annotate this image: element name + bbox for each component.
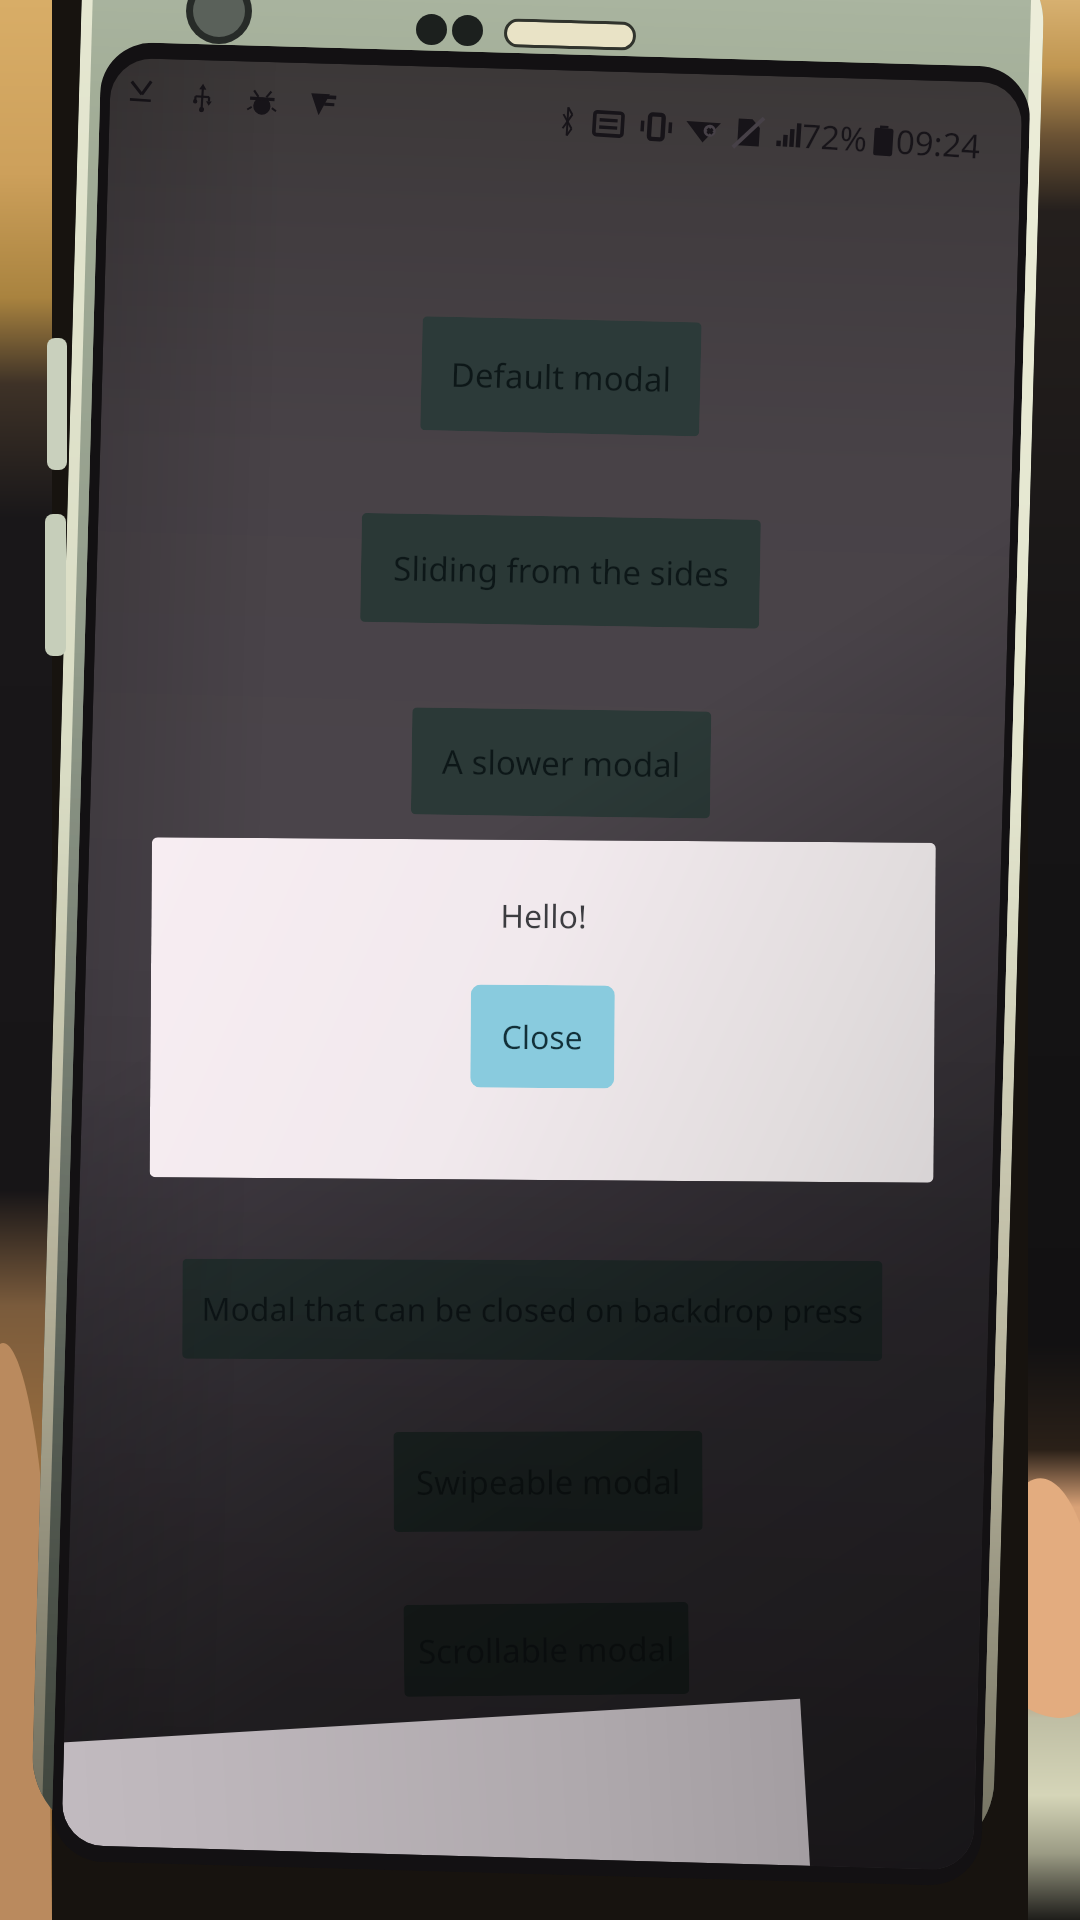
staticText: Sliding from the sides: [392, 542, 730, 600]
button[interactable]: Scrollable modal: [401, 1594, 692, 1705]
staticText: Swipeable modal: [414, 1451, 682, 1512]
button[interactable]: A slower modal: [409, 703, 713, 823]
button[interactable]: Sliding from the sides: [359, 509, 762, 633]
other: USB: [183, 79, 221, 117]
staticText: 72%: [801, 113, 869, 162]
staticText: A slower modal: [441, 735, 682, 790]
staticText: Default modal: [450, 351, 672, 403]
staticText: Close: [500, 1013, 585, 1061]
other: Developer options: [243, 83, 281, 121]
button[interactable]: Default modal: [420, 315, 702, 438]
staticText: Modal that can be closed on backdrop pre…: [200, 1270, 864, 1349]
other: Download: [121, 75, 159, 113]
button[interactable]: Modal that can be closed on backdrop pre…: [180, 1241, 885, 1378]
staticText: Hello!: [499, 892, 588, 940]
staticText: 09:24: [894, 118, 982, 169]
other: VPN: [303, 86, 341, 124]
button[interactable]: Swipeable modal: [391, 1422, 705, 1540]
button[interactable]: Close: [468, 981, 617, 1091]
